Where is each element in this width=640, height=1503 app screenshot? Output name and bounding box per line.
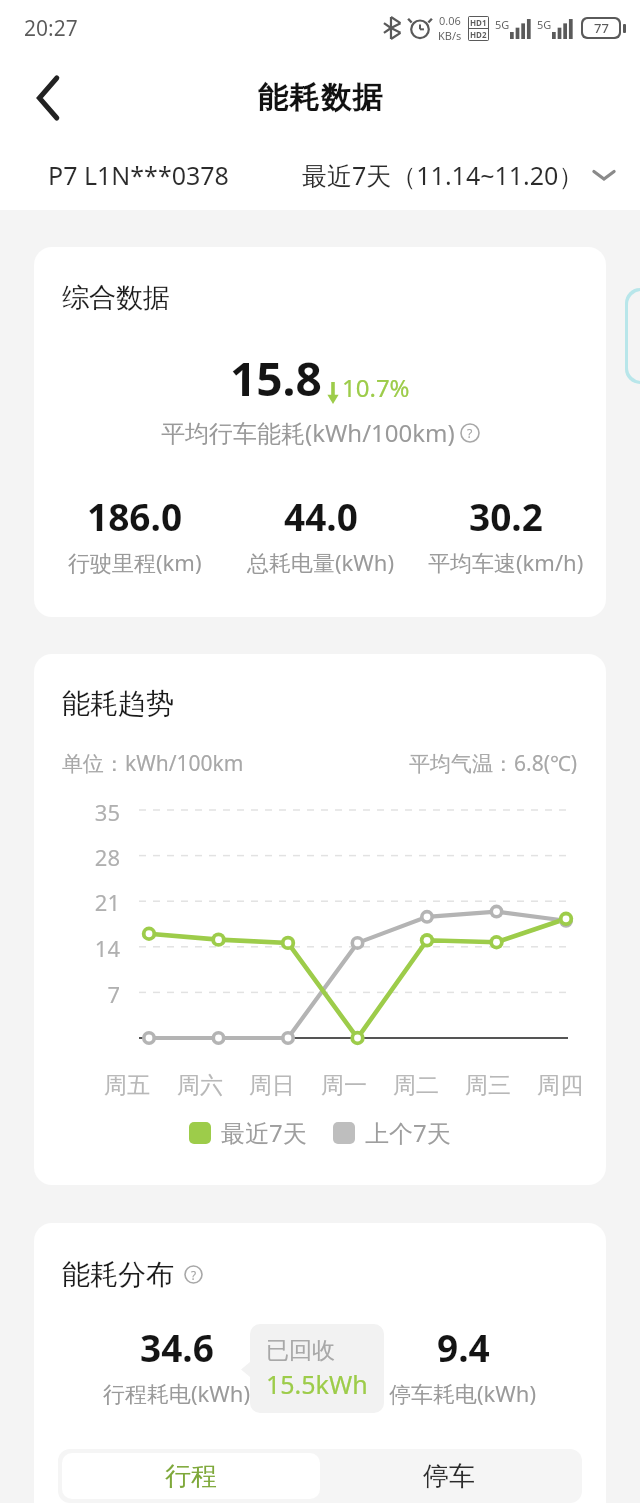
staticText: 最近7天 <box>221 1116 307 1149</box>
staticText: 单位：kWh/100km <box>62 749 244 778</box>
staticText: ? <box>467 425 473 442</box>
staticText: 77 <box>594 19 609 37</box>
staticText: 能耗分布 <box>62 1257 174 1292</box>
staticText: 平均行车能耗(kWh/100km) <box>161 416 455 449</box>
staticText: 10.7% <box>342 371 410 404</box>
button[interactable]: 行程 <box>62 1453 320 1499</box>
button[interactable]: 最近7天 <box>189 1116 307 1149</box>
button[interactable]: Side panel <box>625 288 640 384</box>
staticText: 上个7天 <box>365 1116 451 1149</box>
staticText: 7 <box>68 979 120 1009</box>
button[interactable]: 停车 <box>320 1453 578 1499</box>
staticText: 总耗电量(kWh) <box>247 547 395 577</box>
staticText: HD1 <box>470 17 487 28</box>
staticText: 周六 <box>177 1071 223 1100</box>
staticText: HD2 <box>470 29 487 40</box>
staticText: 周四 <box>537 1071 583 1100</box>
staticText: 9.4 <box>437 1322 490 1372</box>
staticText: 15.8 <box>230 347 322 410</box>
staticText: 20:27 <box>24 14 78 43</box>
staticText: 平均车速(km/h) <box>428 547 584 577</box>
staticText: 周二 <box>393 1071 439 1100</box>
staticText: 周五 <box>104 1071 150 1100</box>
staticText: 周一 <box>321 1071 367 1100</box>
staticText: 综合数据 <box>62 281 170 315</box>
staticText: 行程 <box>165 1460 217 1493</box>
staticText: 28 <box>68 842 120 872</box>
staticText: KB/s <box>438 28 462 43</box>
staticText: 停车耗电(kWh) <box>389 1378 537 1408</box>
staticText: ? <box>191 1267 197 1283</box>
staticText: 平均气温：6.8(℃) <box>409 749 578 778</box>
staticText: 5G <box>537 17 552 32</box>
staticText: 14 <box>68 933 120 963</box>
button[interactable]: 上个7天 <box>333 1116 451 1149</box>
staticText: 周三 <box>465 1071 511 1100</box>
staticText: 186.0 <box>87 491 183 541</box>
staticText: 5G <box>495 17 510 32</box>
staticText: 35 <box>68 797 120 827</box>
staticText: 停车 <box>423 1460 475 1493</box>
staticText: 已回收 <box>266 1336 335 1365</box>
staticText: P7 L1N***0378 <box>48 158 229 192</box>
staticText: 行程耗电(kWh) <box>103 1378 251 1408</box>
staticText: 30.2 <box>469 491 543 541</box>
staticText: 15.5kWh <box>266 1367 368 1401</box>
staticText: 行驶里程(km) <box>68 547 202 577</box>
staticText: 能耗趋势 <box>62 686 174 721</box>
staticText: 最近7天（11.14~11.20） <box>302 158 584 192</box>
staticText: 44.0 <box>284 491 358 541</box>
staticText: 能耗数据 <box>257 79 383 117</box>
staticText: 34.6 <box>140 1322 214 1372</box>
staticText: 21 <box>68 887 120 917</box>
button[interactable]: Back <box>22 71 76 125</box>
staticText: 0.06 <box>439 13 461 28</box>
staticText: 周日 <box>249 1071 295 1100</box>
button[interactable]: 最近7天（11.14~11.20） <box>302 158 616 192</box>
